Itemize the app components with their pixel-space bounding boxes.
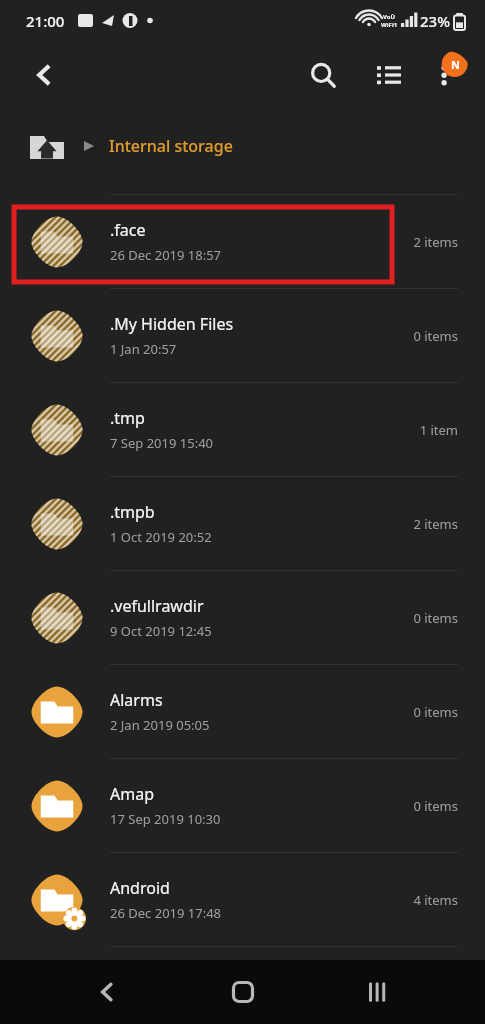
button[interactable]: Recents [350,964,406,1020]
staticText: Amap [110,783,155,805]
button[interactable]: .My Hidden Files [0,289,485,382]
staticText: 0 items [389,327,458,345]
button[interactable]: Amap [0,759,485,852]
staticText: 26 Dec 2019 18:57 [110,246,222,264]
button[interactable]: .tmp [0,383,485,476]
button[interactable]: View as list [365,51,413,99]
staticText: 0 items [389,703,458,721]
staticText: .vefullrawdir [110,595,204,617]
staticText: 23% [420,11,450,31]
staticText: .My Hidden Files [110,313,234,335]
staticText: Alarms [110,689,163,711]
staticText: 7 Sep 2019 15:40 [110,434,214,452]
staticText: .face [110,219,146,241]
button[interactable]: Android [0,853,485,946]
staticText: .tmpb [110,501,155,523]
staticText: 1 Oct 2019 20:52 [110,528,212,546]
button[interactable]: Back [20,51,68,99]
button[interactable]: Back [79,964,135,1020]
staticText: Android [110,877,170,899]
staticText: 26 Dec 2019 17:48 [110,904,222,922]
staticText: 4 items [389,891,458,909]
staticText: N [451,57,460,72]
staticText: Internal storage [109,135,233,157]
button[interactable]: Alarms [0,665,485,758]
button[interactable]: Home [215,964,271,1020]
button[interactable]: More options [423,51,471,99]
button[interactable]: Search [299,51,347,99]
staticText: 1 item [389,421,458,439]
button[interactable]: .tmpb [0,477,485,570]
staticText: 2 Jan 2019 05:05 [110,716,210,734]
staticText: VoÙ [383,13,396,21]
button[interactable]: .face [0,195,485,288]
button[interactable]: .vefullrawdir [0,571,485,664]
staticText: 1 Jan 20:57 [110,340,177,358]
staticText: 2 items [389,515,458,533]
staticText: 2 items [389,233,458,251]
staticText: .tmp [110,407,145,429]
staticText: WiFi1 [381,21,398,29]
staticText: 9 Oct 2019 12:45 [110,622,212,640]
staticText: 17 Sep 2019 10:30 [110,810,221,828]
staticText: 0 items [389,609,458,627]
staticText: 21:00 [26,11,65,31]
button[interactable]: Internal storage [0,108,485,184]
staticText: 0 items [389,797,458,815]
